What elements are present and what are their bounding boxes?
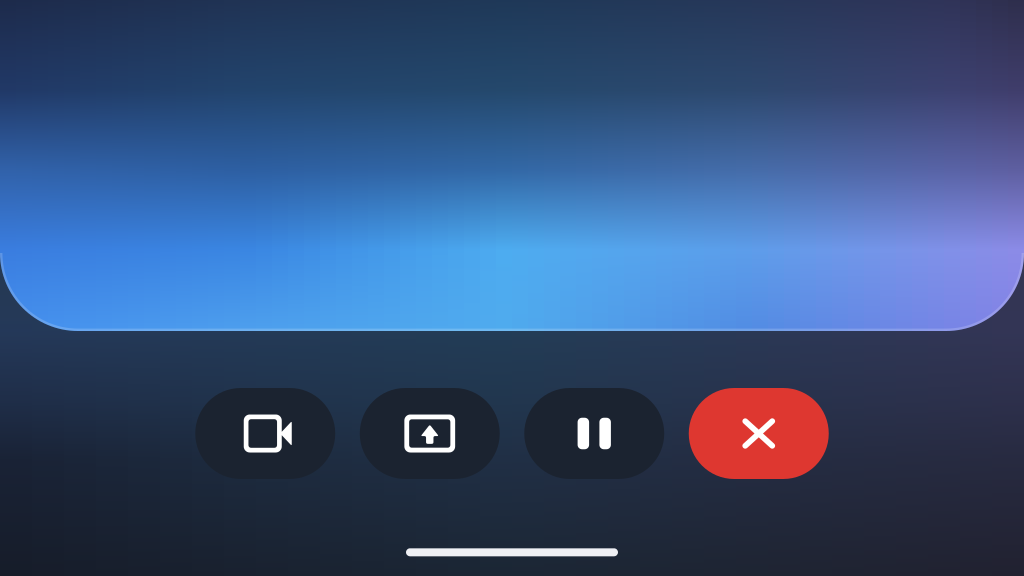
button[interactable]: Pause [524, 388, 664, 479]
button[interactable]: Turn Camera Off [195, 388, 335, 479]
button[interactable]: Share Screen [360, 388, 500, 479]
button[interactable]: End Call [689, 388, 829, 479]
